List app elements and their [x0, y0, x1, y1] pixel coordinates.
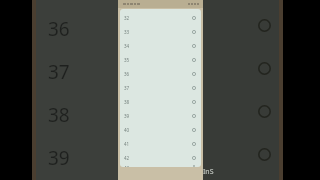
button[interactable]: 40	[120, 123, 201, 137]
button[interactable]: Select item	[255, 16, 273, 34]
staticText: 36	[124, 71, 130, 77]
button[interactable]: 43	[120, 165, 201, 167]
button[interactable]: 37	[48, 59, 88, 81]
button[interactable]: 33	[120, 25, 201, 39]
staticText: 39	[124, 113, 130, 119]
staticText: 41	[124, 141, 130, 147]
staticText: 43	[124, 165, 130, 167]
staticText: 37	[124, 85, 130, 91]
staticText: 37	[48, 59, 70, 81]
button[interactable]: 32	[120, 11, 201, 25]
button[interactable]: 39	[120, 109, 201, 123]
staticText: 38	[48, 102, 70, 124]
button[interactable]: 41	[120, 137, 201, 151]
button[interactable]: Select item	[203, 0, 283, 180]
staticText: InS	[203, 167, 214, 177]
staticText: 33	[124, 29, 130, 35]
staticText: 36	[48, 16, 70, 38]
button[interactable]: Select item	[255, 145, 273, 163]
button[interactable]: Select item	[255, 102, 273, 120]
button[interactable]: 39	[48, 145, 88, 167]
button[interactable]: 36	[120, 67, 201, 81]
staticText: 35	[124, 57, 130, 63]
staticText: 38	[124, 99, 130, 105]
button[interactable]: 38	[48, 102, 88, 124]
button[interactable]: Select item	[255, 59, 273, 77]
button[interactable]: 35	[120, 53, 201, 67]
staticText: 34	[124, 43, 130, 49]
button[interactable]: 36	[48, 16, 88, 38]
button[interactable]: 37	[120, 81, 201, 95]
staticText: 39	[48, 145, 70, 167]
staticText: 42	[124, 155, 130, 161]
button[interactable]: 34	[120, 39, 201, 53]
button[interactable]: 42	[120, 151, 201, 165]
staticText: 40	[124, 127, 130, 133]
button[interactable]: 38	[120, 95, 201, 109]
staticText: 32	[124, 15, 130, 21]
button[interactable]: 36	[32, 0, 118, 180]
